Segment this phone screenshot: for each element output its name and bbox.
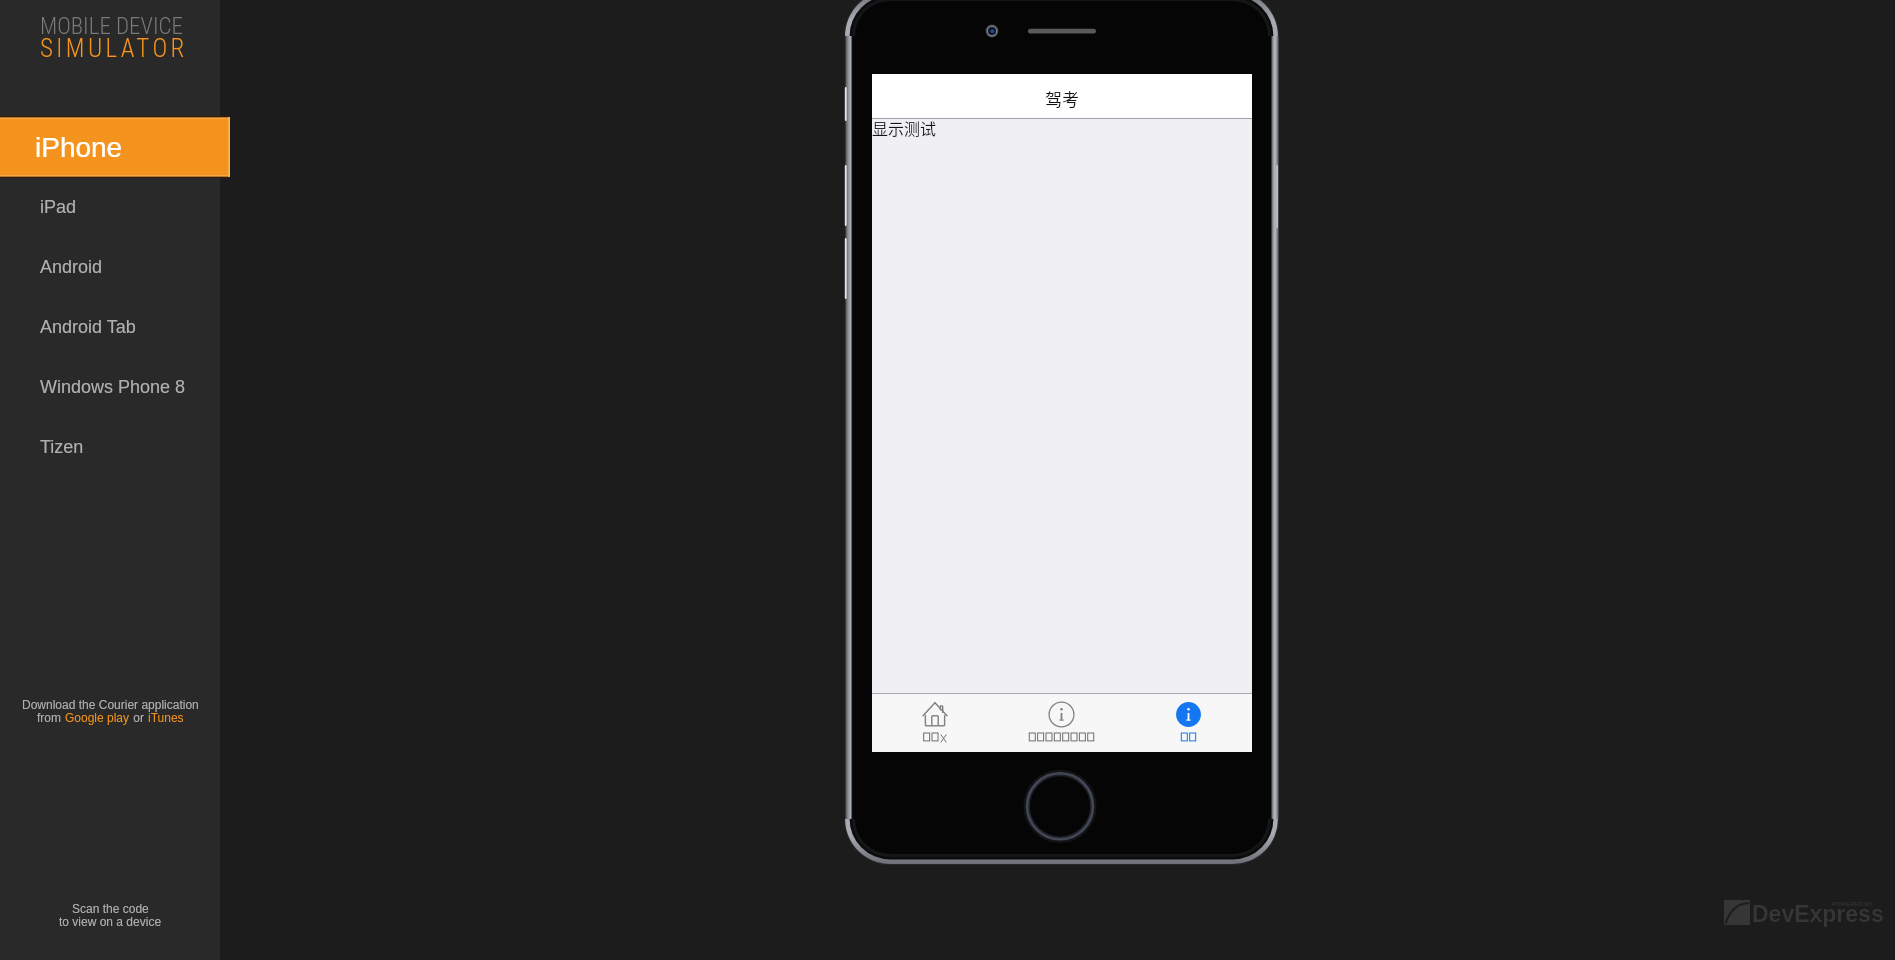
staticText: SIMULATOR: [40, 34, 188, 63]
staticText: POWERED BY: [1832, 901, 1874, 908]
staticText: Download the Courier application: [22, 698, 199, 711]
button[interactable]: Practice: [998, 694, 1125, 752]
button[interactable]: Home: [872, 694, 998, 752]
button[interactable]: Windows Phone 8: [0, 357, 220, 417]
button[interactable]: Google play: [65, 711, 130, 724]
staticText: Android Tab: [40, 317, 136, 337]
staticText: 显示测试: [872, 116, 937, 139]
button[interactable]: iPad: [0, 177, 220, 237]
staticText: iPad: [40, 197, 77, 217]
button[interactable]: Android: [0, 237, 220, 297]
staticText: Scan the code: [72, 902, 149, 915]
staticText: iPhone: [35, 132, 123, 163]
button[interactable]: iPhone: [0, 117, 230, 177]
staticText: MOBILE DEVICE: [40, 13, 184, 40]
button[interactable]: Android Tab: [0, 297, 220, 357]
staticText: to view on a device: [59, 915, 162, 928]
staticText: DevExpress: [1752, 901, 1884, 927]
button[interactable]: Tizen: [0, 417, 220, 477]
staticText: from: [37, 711, 65, 724]
button[interactable]: Exam: [1125, 694, 1252, 752]
staticText: 驾考: [1045, 86, 1079, 111]
staticText: Tizen: [40, 437, 84, 457]
staticText: or: [130, 711, 148, 724]
staticText: Android: [40, 257, 103, 277]
staticText: Windows Phone 8: [40, 377, 186, 397]
button[interactable]: iTunes: [148, 711, 184, 724]
